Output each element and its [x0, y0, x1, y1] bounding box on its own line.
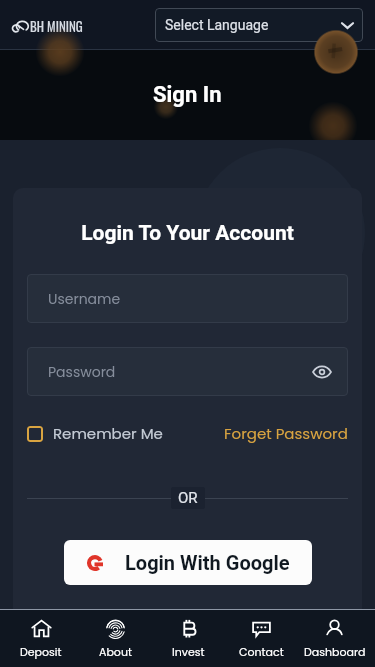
staticText: Dashboard [304, 644, 366, 659]
staticText: Sign In [153, 82, 222, 108]
button[interactable]: BH MINING [12, 16, 83, 35]
staticText: About [99, 644, 132, 659]
button[interactable]: About [78, 614, 152, 663]
staticText: BH MINING [30, 16, 83, 35]
button[interactable]: Username [27, 274, 348, 323]
button[interactable]: Password [27, 347, 348, 396]
staticText: Deposit [20, 644, 62, 659]
staticText: Login To Your Account [27, 221, 348, 246]
button[interactable]: Show password [310, 360, 334, 384]
staticText: Invest [172, 644, 205, 659]
staticText: Password [48, 362, 116, 382]
staticText: Remember Me [53, 423, 163, 444]
button[interactable]: Select Language [155, 8, 363, 42]
button[interactable]: Contact [225, 614, 298, 663]
button[interactable]: Remember Me [27, 423, 163, 444]
button[interactable]: Deposit [4, 614, 78, 663]
staticText: Select Language [165, 17, 269, 33]
staticText: Contact [239, 644, 284, 659]
staticText: OR [178, 489, 198, 507]
staticText: Login With Google [125, 551, 290, 574]
button[interactable]: Dashboard [298, 614, 371, 663]
button[interactable]: Login With Google [64, 540, 312, 585]
button[interactable]: Forget Password [224, 423, 348, 444]
button[interactable]: Invest [152, 614, 225, 663]
staticText: Username [48, 289, 121, 309]
